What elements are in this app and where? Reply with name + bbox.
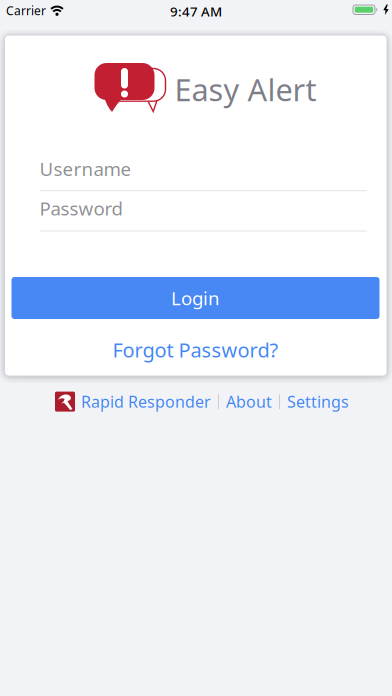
staticText: Easy Alert xyxy=(174,69,316,110)
button[interactable]: Username xyxy=(39,156,366,192)
staticText: Forgot Password? xyxy=(112,336,278,363)
staticText: Carrier xyxy=(6,3,46,19)
staticText: Settings xyxy=(287,391,349,412)
button[interactable]: Forgot Password? xyxy=(112,336,278,363)
staticText: Username xyxy=(39,156,131,181)
staticText: Rapid Responder xyxy=(81,391,211,412)
button[interactable]: Login xyxy=(11,277,379,319)
button[interactable]: Settings xyxy=(287,391,349,412)
staticText: Login xyxy=(171,286,220,310)
staticText: 9:47 AM xyxy=(170,2,222,20)
button[interactable]: About xyxy=(226,391,272,412)
staticText: Password xyxy=(39,196,122,221)
button[interactable]: Rapid Responder xyxy=(55,391,211,412)
staticText: About xyxy=(226,391,272,412)
button[interactable]: Password xyxy=(39,196,366,233)
